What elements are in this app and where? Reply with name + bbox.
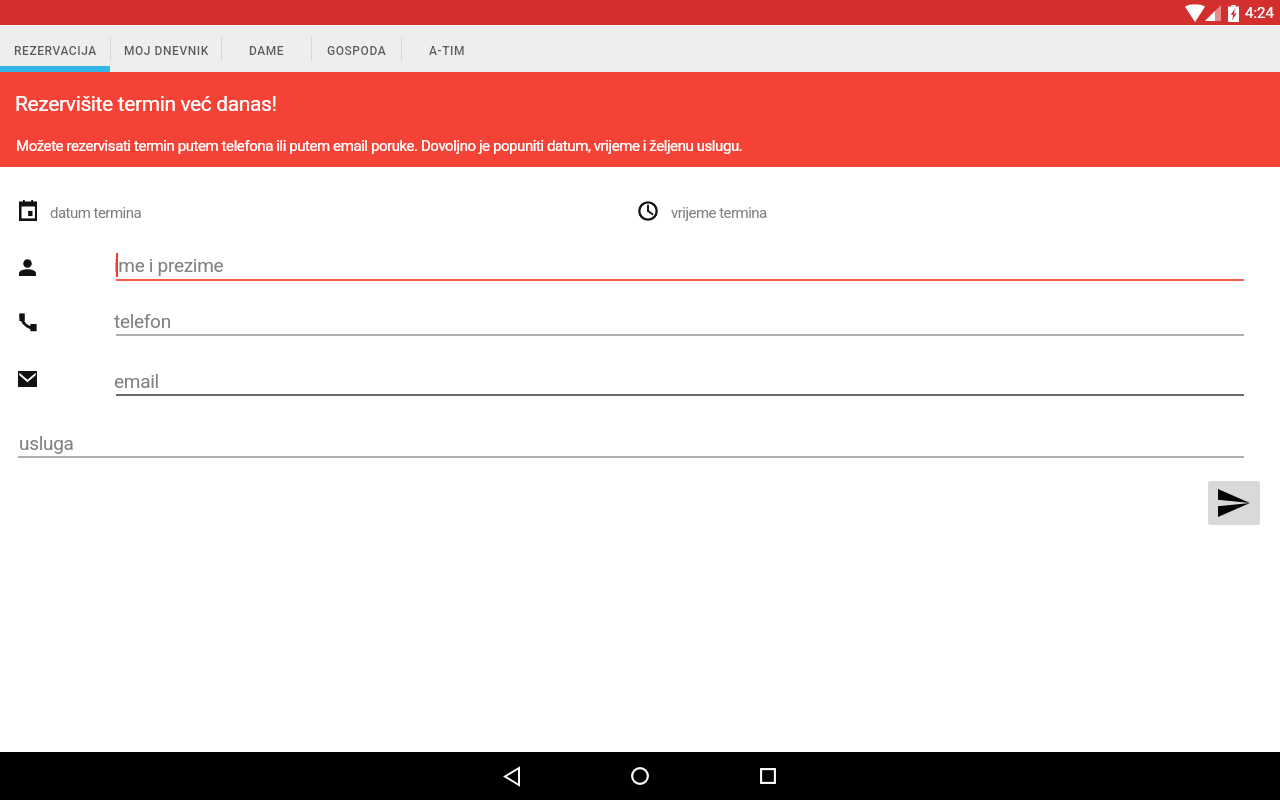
button[interactable]: usluga bbox=[18, 432, 1244, 456]
staticText: DAME bbox=[249, 44, 285, 58]
button[interactable]: Back bbox=[488, 752, 536, 800]
button[interactable]: Send bbox=[1208, 481, 1260, 525]
button[interactable]: Home bbox=[616, 752, 664, 800]
staticText: ime i prezime bbox=[114, 254, 224, 276]
button[interactable]: GOSPODA bbox=[312, 25, 401, 72]
button[interactable]: datum termina bbox=[19, 194, 619, 226]
staticText: GOSPODA bbox=[327, 44, 387, 58]
staticText: usluga bbox=[19, 432, 74, 454]
button[interactable]: A-TIM bbox=[402, 25, 492, 72]
staticText: MOJ DNEVNIK bbox=[124, 44, 209, 58]
button[interactable]: telefon bbox=[116, 311, 1244, 335]
button[interactable]: email bbox=[116, 371, 1244, 395]
staticText: A-TIM bbox=[429, 44, 465, 58]
button[interactable]: MOJ DNEVNIK bbox=[111, 25, 221, 72]
staticText: Rezervišite termin već danas! bbox=[15, 92, 277, 117]
staticText: REZERVACIJA bbox=[14, 44, 97, 58]
button[interactable]: Recent apps bbox=[744, 752, 792, 800]
staticText: telefon bbox=[114, 310, 171, 332]
staticText: email bbox=[114, 370, 159, 392]
staticText: 4:24 bbox=[1245, 4, 1274, 22]
button[interactable]: REZERVACIJA bbox=[0, 25, 110, 72]
staticText: datum termina bbox=[50, 204, 142, 222]
button[interactable]: DAME bbox=[222, 25, 311, 72]
button[interactable]: ime i prezime bbox=[116, 255, 1244, 280]
button[interactable]: vrijeme termina bbox=[638, 195, 1238, 227]
staticText: vrijeme termina bbox=[671, 204, 767, 222]
staticText: Možete rezervisati termin putem telefona… bbox=[16, 137, 743, 155]
